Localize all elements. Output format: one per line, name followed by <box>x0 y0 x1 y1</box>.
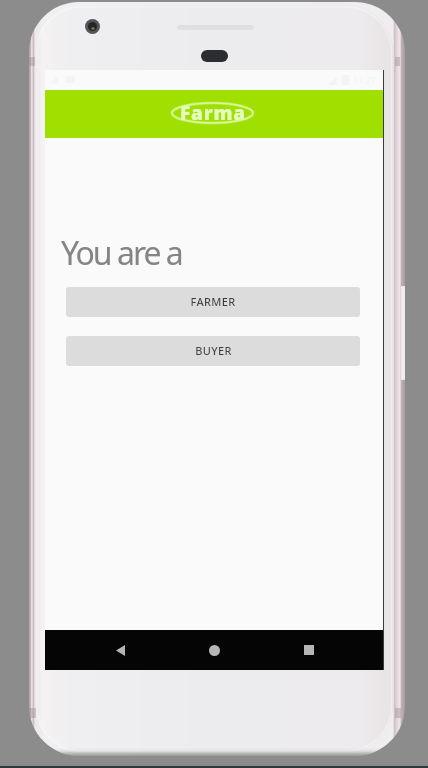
button[interactable]: BUYER <box>66 336 360 366</box>
staticText: Farma <box>180 100 246 126</box>
staticText: BUYER <box>195 343 232 358</box>
staticText: FARMER <box>190 294 236 309</box>
button[interactable]: Home <box>194 630 234 670</box>
button[interactable]: FARMER <box>66 287 360 317</box>
button[interactable]: Back <box>100 630 140 670</box>
button[interactable]: Recent apps <box>289 630 329 670</box>
staticText: You are a <box>61 231 182 275</box>
